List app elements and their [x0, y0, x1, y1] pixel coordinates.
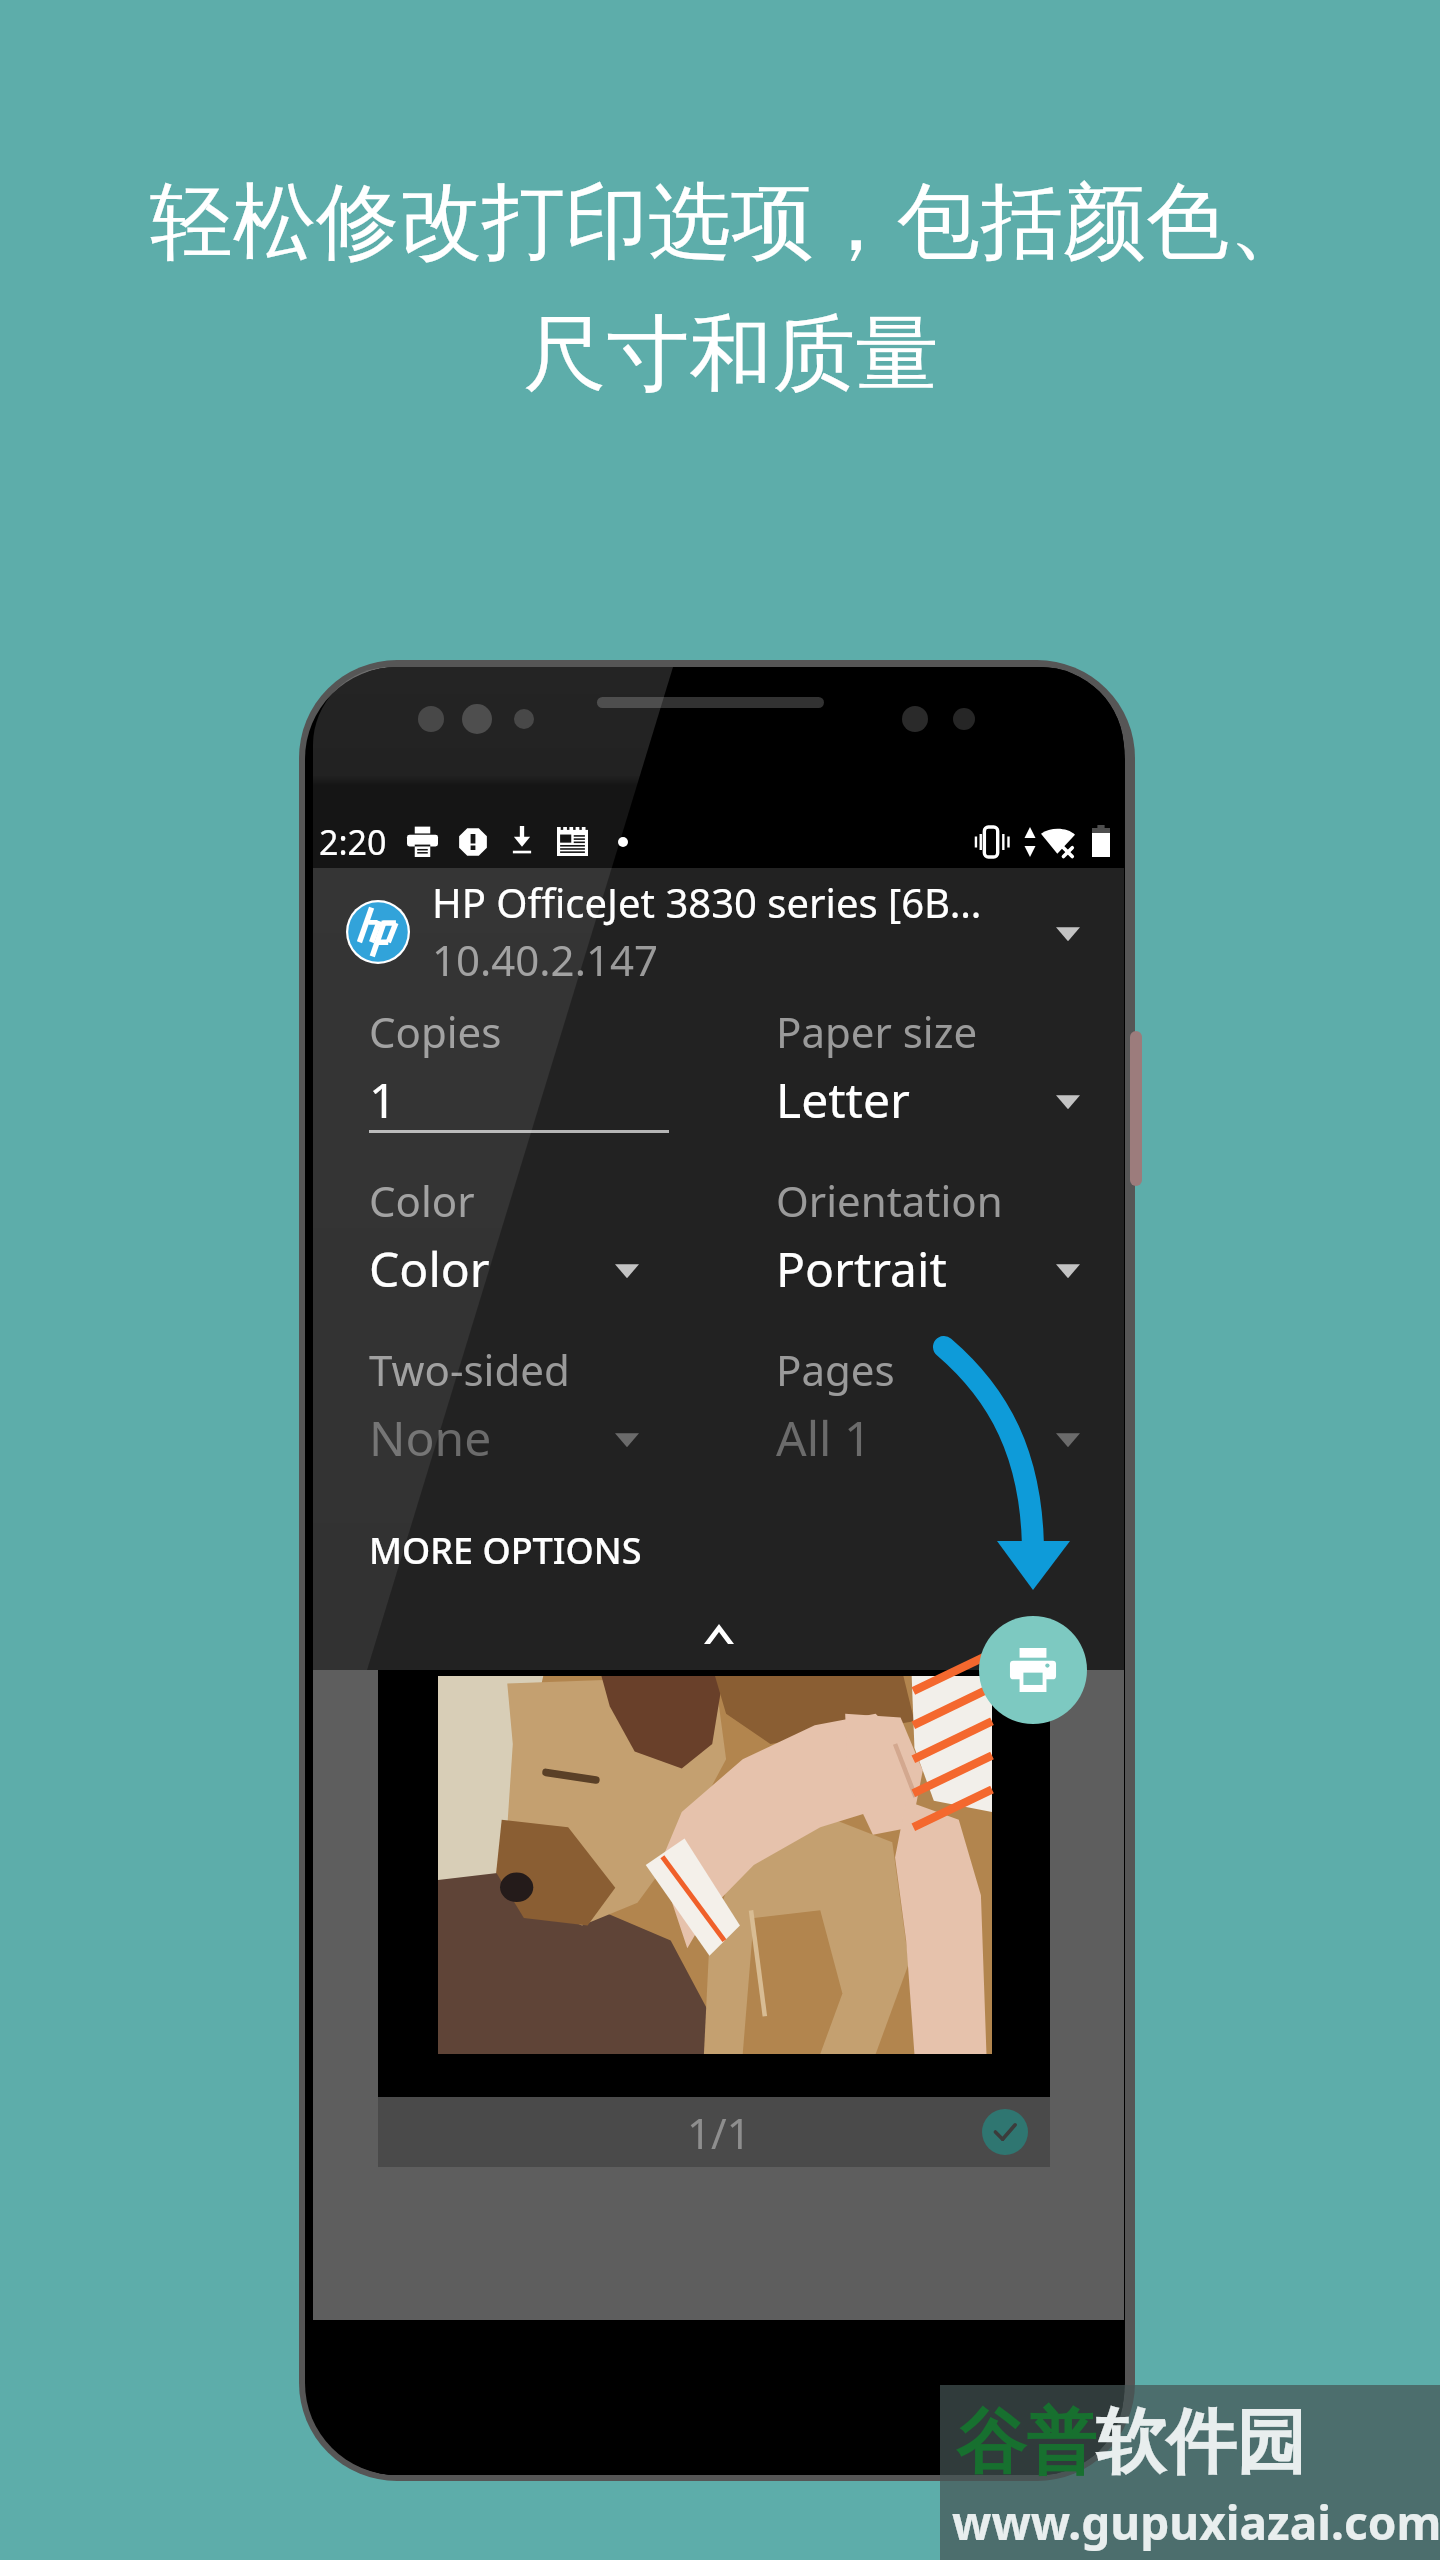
staticText: Copies: [369, 1003, 502, 1060]
button[interactable]: Copies: [313, 995, 718, 1164]
staticText: 谷普: [956, 2399, 1096, 2487]
staticText: Orientation: [776, 1172, 1003, 1229]
staticText: HP OfficeJet 3830 series [6B…: [432, 875, 982, 929]
staticText: 10.40.2.147: [432, 931, 658, 988]
button[interactable]: MORE OPTIONS: [313, 1502, 1124, 1598]
staticText: 软件园: [1096, 2399, 1306, 2487]
staticText: 轻松修改打印选项，包括颜色、 尺寸和质量: [150, 170, 1312, 406]
button[interactable]: Paper size: [718, 995, 1124, 1164]
staticText: Portrait: [776, 1236, 947, 1301]
staticText: Color: [369, 1172, 475, 1229]
button[interactable]: Color: [313, 1164, 718, 1333]
staticText: Two-sided: [369, 1341, 570, 1398]
button[interactable]: Collapse options: [664, 1598, 774, 1670]
staticText: 1/1: [687, 2104, 751, 2161]
button[interactable]: Two-sided: [313, 1333, 718, 1502]
button[interactable]: Select printer: [1056, 917, 1080, 947]
staticText: None: [369, 1405, 492, 1470]
staticText: Paper size: [776, 1003, 978, 1060]
staticText: Pages: [776, 1341, 895, 1398]
button[interactable]: Orientation: [718, 1164, 1124, 1333]
button[interactable]: Pages: [718, 1333, 1124, 1502]
staticText: MORE OPTIONS: [369, 1526, 642, 1575]
staticText: Letter: [776, 1067, 910, 1132]
staticText: www.gupuxiazai.com: [952, 2491, 1440, 2554]
staticText: Color: [369, 1236, 490, 1301]
staticText: 1: [369, 1067, 397, 1132]
button[interactable]: Print: [979, 1616, 1087, 1724]
button[interactable]: Selected: [982, 2109, 1028, 2155]
staticText: All 1: [776, 1405, 872, 1470]
staticText: 2:20: [319, 819, 387, 865]
button[interactable]: HP OfficeJet 3830 series [6B…: [313, 868, 1124, 995]
